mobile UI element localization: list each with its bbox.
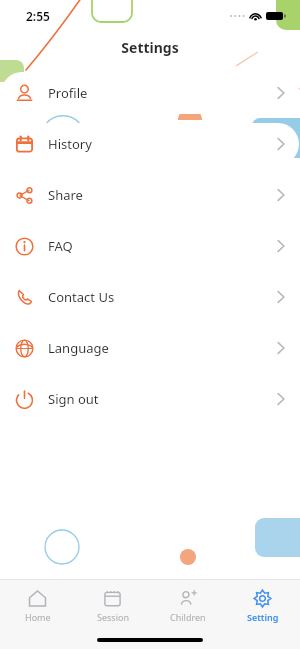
button[interactable]: Setting bbox=[225, 580, 300, 631]
staticText: Setting bbox=[247, 611, 279, 623]
button[interactable]: Language bbox=[1, 327, 299, 369]
staticText: Home bbox=[25, 611, 51, 623]
button[interactable]: Share bbox=[1, 174, 299, 216]
button[interactable]: FAQ bbox=[1, 225, 299, 267]
button[interactable]: Session bbox=[75, 580, 150, 631]
staticText: FAQ bbox=[48, 237, 73, 255]
staticText: Share bbox=[48, 186, 83, 204]
staticText: Language bbox=[48, 339, 109, 357]
staticText: 2:55 bbox=[26, 8, 50, 24]
button[interactable]: Sign out bbox=[1, 378, 299, 420]
button[interactable]: Children bbox=[150, 580, 225, 631]
button[interactable]: Contact Us bbox=[1, 276, 299, 318]
staticText: Children bbox=[170, 611, 206, 623]
button[interactable]: Profile bbox=[1, 72, 299, 114]
staticText: Profile bbox=[48, 84, 88, 102]
staticText: Settings bbox=[121, 38, 179, 57]
button[interactable]: History bbox=[1, 123, 299, 165]
staticText: Contact Us bbox=[48, 288, 115, 306]
button[interactable]: Home bbox=[0, 580, 75, 631]
staticText: Sign out bbox=[48, 390, 99, 408]
staticText: History bbox=[48, 135, 92, 153]
staticText: Session bbox=[97, 611, 129, 623]
